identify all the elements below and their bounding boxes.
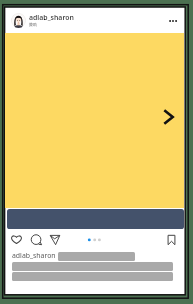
button[interactable] bbox=[5, 33, 184, 208]
button[interactable]: Save bbox=[164, 232, 179, 247]
staticText: 贊助 bbox=[29, 22, 38, 27]
button[interactable]: adlab_sharon bbox=[29, 11, 89, 30]
button[interactable]: adlab_sharon bbox=[12, 251, 56, 260]
button[interactable]: Comment bbox=[29, 232, 44, 247]
button[interactable]: Like bbox=[9, 232, 24, 247]
button[interactable]: Sponsored action bbox=[7, 209, 184, 229]
staticText: adlab_sharon bbox=[29, 13, 74, 22]
button[interactable]: More options bbox=[165, 14, 183, 28]
button[interactable]: Profile photo, adlab_sharon bbox=[11, 13, 26, 28]
button[interactable]: Share bbox=[47, 232, 62, 247]
